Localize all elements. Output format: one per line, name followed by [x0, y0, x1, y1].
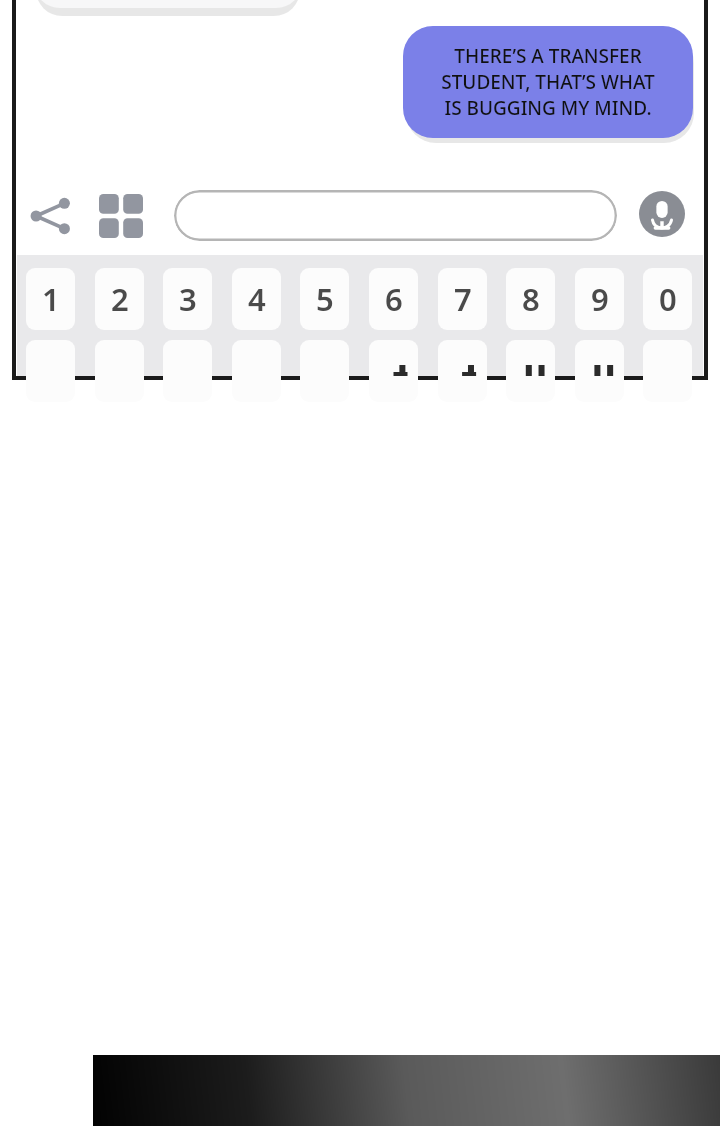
button[interactable]: [438, 340, 487, 402]
button[interactable]: 4: [232, 268, 281, 330]
staticText: 6: [385, 278, 403, 320]
button[interactable]: Voice input: [639, 191, 685, 237]
button[interactable]: 6: [369, 268, 418, 330]
button[interactable]: 7: [438, 268, 487, 330]
staticText: 0: [659, 278, 677, 320]
staticText: 2: [111, 278, 129, 320]
button[interactable]: [174, 190, 617, 241]
button[interactable]: 1: [26, 268, 75, 330]
button[interactable]: 5: [300, 268, 349, 330]
button[interactable]: 8: [506, 268, 555, 330]
staticText: 7: [454, 278, 472, 320]
staticText: 3: [179, 278, 197, 320]
button[interactable]: Apps: [99, 194, 143, 238]
staticText: 8: [522, 278, 540, 320]
button[interactable]: 2: [95, 268, 144, 330]
button[interactable]: Share: [26, 192, 74, 240]
button[interactable]: [506, 340, 555, 402]
staticText: 4: [248, 278, 266, 320]
button[interactable]: 3: [163, 268, 212, 330]
staticText: THERE’S A TRANSFER STUDENT, THAT’S WHAT …: [441, 43, 655, 121]
button[interactable]: [369, 340, 418, 402]
staticText: 5: [316, 278, 334, 320]
button[interactable]: 9: [575, 268, 624, 330]
staticText: 9: [591, 278, 609, 320]
button[interactable]: [575, 340, 624, 402]
staticText: 1: [42, 278, 60, 320]
button[interactable]: 0: [643, 268, 692, 330]
